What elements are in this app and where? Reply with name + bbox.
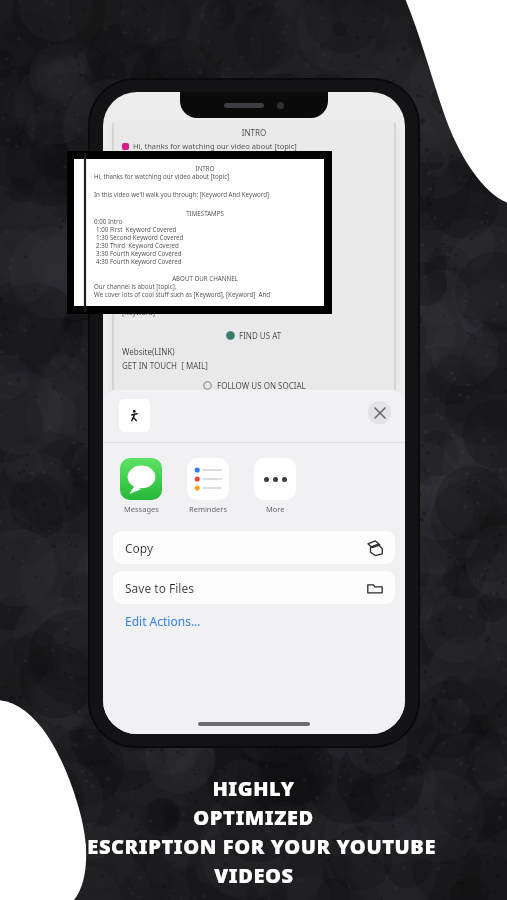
staticText: INTRO bbox=[94, 164, 316, 172]
button[interactable]: More bbox=[254, 458, 296, 514]
button[interactable]: Close bbox=[368, 401, 391, 424]
staticText: 1:30 Second Keyword Covered bbox=[96, 233, 184, 241]
staticText: FOLLOW US ON SOCIAL bbox=[217, 380, 306, 391]
staticText: 3:30 Fourth Keyword Covered bbox=[96, 249, 182, 257]
button[interactable]: Edit Actions... bbox=[125, 613, 201, 629]
staticText: FIND US AT bbox=[239, 330, 282, 341]
staticText: More bbox=[266, 504, 285, 514]
button[interactable]: Reminders bbox=[187, 458, 229, 514]
staticText: 0:00 Intro bbox=[94, 217, 123, 225]
staticText: In this video we'll walk you through: [K… bbox=[94, 190, 270, 198]
staticText: 1:00 First Keyword Covered bbox=[96, 225, 177, 233]
button[interactable]: Document preview bbox=[119, 399, 150, 432]
staticText: Save to Files bbox=[125, 580, 194, 596]
staticText: TIMESTAMPS bbox=[94, 209, 316, 217]
staticText: 4:30 Fourth Keyword Covered bbox=[96, 257, 182, 265]
staticText: We cover lots of cool stuff such as [Key… bbox=[94, 290, 271, 298]
button[interactable]: Copy bbox=[113, 531, 395, 564]
staticText: Hi, thanks for watching our video about … bbox=[94, 172, 230, 180]
button[interactable]: Save to Files bbox=[113, 571, 395, 604]
staticText: ] And bbox=[308, 295, 328, 305]
staticText: [Keyword] bbox=[122, 308, 156, 318]
staticText: Edit Actions... bbox=[125, 613, 201, 629]
staticText: GET IN TOUCH [ MAIL] bbox=[122, 360, 208, 371]
staticText: Copy bbox=[125, 540, 154, 556]
staticText: Hi, thanks for watching our video about … bbox=[133, 141, 297, 151]
staticText: VIDEOS bbox=[214, 862, 294, 889]
staticText: Messages bbox=[124, 504, 159, 514]
staticText: Website(LINK) bbox=[122, 346, 175, 357]
staticText: Our channel is about [topic]. bbox=[94, 282, 177, 290]
button[interactable]: Messages bbox=[120, 458, 162, 514]
staticText: 2:30 Third Keyword Covered bbox=[96, 241, 179, 249]
staticText: ABOUT OUR CHANNEL bbox=[94, 274, 316, 282]
staticText: HIGHLY bbox=[212, 775, 295, 802]
staticText: INTRO bbox=[122, 127, 386, 138]
staticText: Reminders bbox=[189, 504, 228, 514]
staticText: DESCRIPTION FOR YOUR YOUTUBE bbox=[72, 833, 436, 860]
staticText: OPTIMIZED bbox=[193, 804, 314, 831]
